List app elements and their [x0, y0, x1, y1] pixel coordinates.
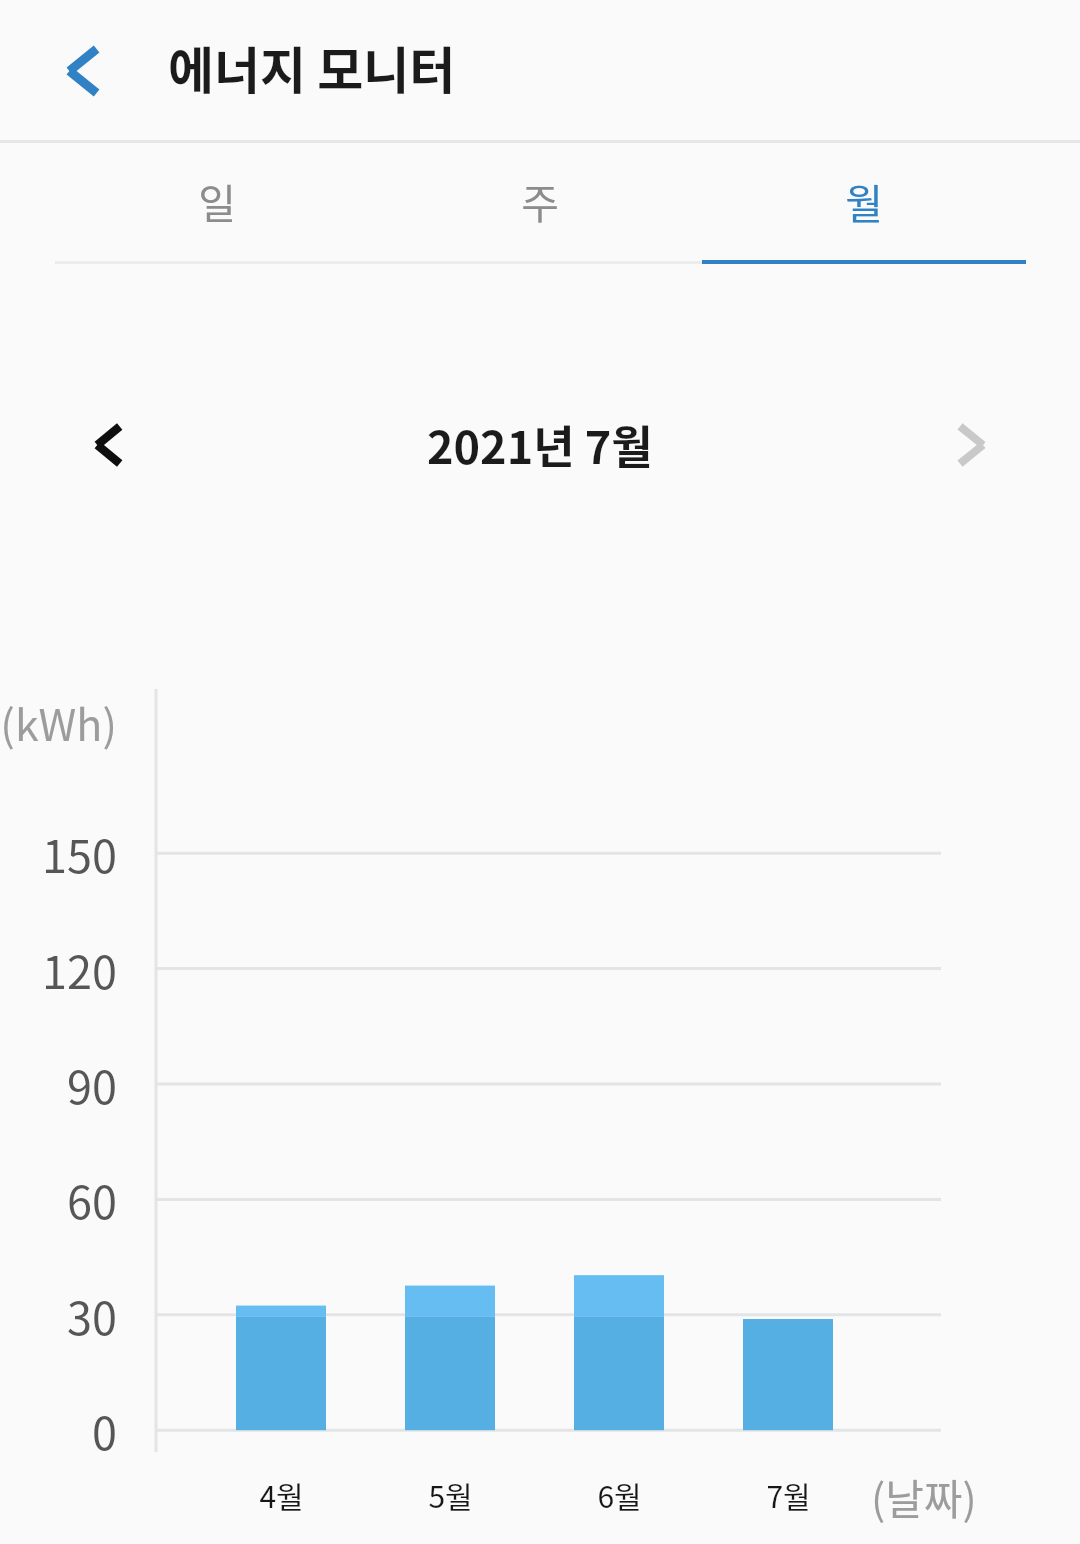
- staticText: 4월: [259, 1473, 304, 1516]
- staticText: (날짜): [871, 1466, 977, 1527]
- staticText: 2021년 7월: [427, 412, 653, 477]
- staticText: 30: [67, 1283, 117, 1348]
- staticText: 일: [198, 171, 236, 230]
- staticText: (kWh): [0, 691, 117, 753]
- button[interactable]: 일: [55, 143, 378, 258]
- staticText: 60: [67, 1167, 117, 1232]
- staticText: 주: [521, 171, 559, 230]
- button[interactable]: Back: [35, 23, 131, 119]
- button[interactable]: 주: [378, 143, 701, 258]
- staticText: 0: [92, 1398, 117, 1463]
- staticText: 150: [42, 821, 117, 886]
- staticText: 6월: [597, 1473, 642, 1516]
- button[interactable]: Previous month: [60, 397, 156, 493]
- staticText: 월: [845, 171, 883, 230]
- button[interactable]: 월: [702, 143, 1025, 258]
- button[interactable]: Next month: [924, 397, 1020, 493]
- staticText: 90: [67, 1052, 117, 1117]
- staticText: 에너지 모니터: [168, 31, 456, 103]
- staticText: 120: [42, 937, 117, 1002]
- staticText: 7월: [766, 1473, 811, 1516]
- staticText: 5월: [428, 1473, 473, 1516]
